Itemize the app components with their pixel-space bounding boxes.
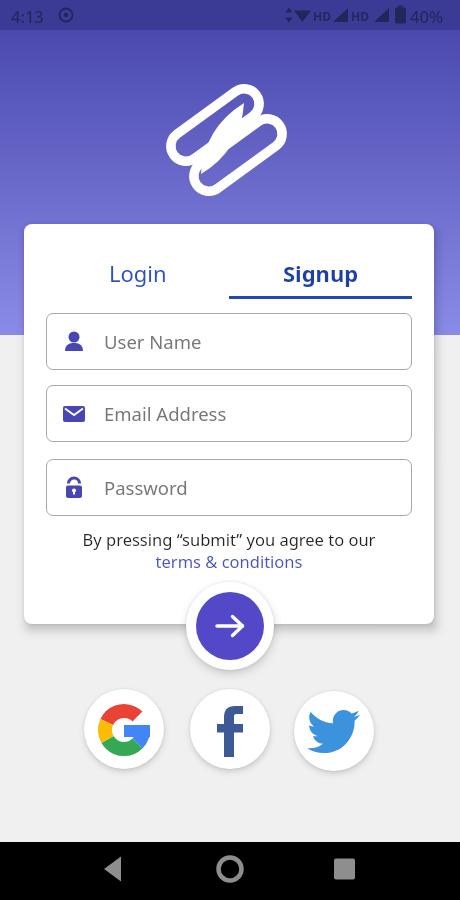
staticText: By pressing “submit” you agree to our	[46, 528, 412, 550]
button[interactable]	[294, 691, 374, 771]
button[interactable]: Signup	[229, 224, 412, 299]
button[interactable]: Login	[46, 224, 229, 288]
staticText: Signup	[283, 258, 359, 288]
button[interactable]	[202, 849, 258, 893]
button[interactable]: terms & conditions	[46, 550, 412, 572]
staticText: User Name	[104, 329, 202, 354]
staticText: Email Address	[104, 401, 227, 426]
button[interactable]: User Name	[46, 313, 412, 370]
button[interactable]	[190, 689, 270, 769]
staticText: HD	[351, 8, 369, 24]
button[interactable]: Email Address	[46, 385, 412, 442]
staticText: 4:13	[11, 5, 44, 27]
button[interactable]: Password	[46, 459, 412, 516]
staticText: Password	[104, 475, 188, 500]
button[interactable]	[316, 849, 372, 893]
button[interactable]	[186, 582, 274, 670]
staticText: 40%	[410, 5, 443, 27]
staticText: Login	[109, 258, 167, 288]
button[interactable]	[84, 689, 164, 769]
staticText: HD	[313, 8, 331, 24]
button[interactable]	[85, 849, 141, 893]
